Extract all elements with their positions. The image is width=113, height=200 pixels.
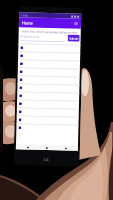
button[interactable]: Home bbox=[19, 17, 81, 29]
button[interactable]: Navigation bbox=[65, 147, 67, 149]
button[interactable]: Navigation bbox=[46, 147, 48, 149]
button[interactable] bbox=[17, 92, 79, 101]
staticText: 12:06 bbox=[21, 13, 28, 17]
button[interactable] bbox=[16, 124, 78, 133]
button[interactable] bbox=[18, 60, 80, 69]
button[interactable]: Navigation bbox=[27, 146, 29, 148]
staticText: LG bbox=[44, 157, 50, 162]
button[interactable] bbox=[17, 76, 80, 85]
button[interactable]: Submit bbox=[67, 34, 80, 42]
button[interactable] bbox=[18, 52, 80, 61]
button[interactable] bbox=[17, 100, 79, 109]
staticText: Submit bbox=[69, 36, 79, 41]
button[interactable] bbox=[17, 84, 79, 93]
staticText: Home bbox=[22, 20, 33, 26]
button[interactable] bbox=[18, 44, 80, 53]
button[interactable] bbox=[17, 108, 79, 117]
staticText: Registration No bbox=[21, 34, 40, 39]
button[interactable] bbox=[16, 116, 79, 125]
button[interactable]: Account bbox=[74, 22, 78, 26]
button[interactable] bbox=[18, 68, 80, 77]
staticText: Select Your refund using Registration Nu… bbox=[22, 29, 78, 35]
